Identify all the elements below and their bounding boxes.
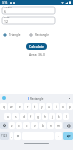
button[interactable]: i	[53, 103, 59, 110]
staticText: k	[58, 115, 60, 119]
staticText: 12	[4, 19, 8, 24]
button[interactable]: w	[8, 103, 15, 110]
staticText: Base	[4, 15, 10, 18]
button[interactable]: Height	[2, 7, 55, 14]
staticText: Height	[4, 5, 12, 8]
staticText: g	[37, 115, 39, 119]
button[interactable]: p	[67, 103, 73, 110]
button[interactable]: z	[9, 122, 15, 129]
staticText: j	[52, 115, 53, 119]
button[interactable]: t	[32, 103, 38, 110]
staticText: h	[44, 115, 46, 119]
staticText: Rectangle	[35, 33, 49, 37]
button[interactable]: o	[60, 103, 66, 110]
button[interactable]: g	[35, 113, 41, 120]
button[interactable]: c	[23, 122, 30, 129]
staticText: b	[42, 124, 44, 128]
button[interactable]: r	[24, 103, 31, 110]
staticText: Triangle	[9, 33, 21, 37]
button[interactable]: Backspace	[63, 122, 73, 129]
button[interactable]: s	[12, 113, 19, 120]
button[interactable]: Shift	[0, 122, 8, 129]
staticText: Area: 36.0	[29, 52, 45, 57]
staticText: z	[11, 124, 13, 128]
button[interactable]: b	[39, 122, 46, 129]
staticText: o	[62, 105, 64, 109]
staticText: v	[34, 124, 36, 128]
staticText: d	[23, 115, 25, 119]
staticText: ?123	[1, 134, 8, 138]
button[interactable]: e	[16, 103, 23, 110]
button[interactable]: l	[63, 113, 69, 120]
staticText: q	[3, 105, 5, 109]
staticText: s	[15, 115, 17, 119]
button[interactable]: y	[39, 103, 45, 110]
staticText: x	[18, 124, 20, 128]
button[interactable]: Calculate	[26, 43, 47, 50]
staticText: y	[41, 105, 43, 109]
staticText: i	[56, 105, 57, 109]
button[interactable]: Period	[55, 132, 62, 140]
button[interactable]: Comma	[10, 132, 13, 140]
staticText: Calculate	[29, 44, 44, 49]
staticText: Rectangle	[30, 97, 44, 101]
staticText: ,	[11, 134, 12, 138]
staticText: 3:16	[2, 1, 8, 5]
button[interactable]: n	[47, 122, 54, 129]
button[interactable]: m	[55, 122, 62, 129]
button[interactable]: v	[31, 122, 38, 129]
button[interactable]: Triangle	[3, 33, 21, 37]
button[interactable]: Enter	[63, 132, 73, 140]
staticText: .	[58, 134, 59, 138]
button[interactable]: a	[4, 113, 11, 120]
staticText: r	[27, 105, 29, 109]
button[interactable]: k	[56, 113, 62, 120]
button[interactable]: j	[49, 113, 55, 120]
button[interactable]: Google search	[2, 96, 6, 100]
button[interactable]: u	[46, 103, 52, 110]
staticText: w	[10, 105, 13, 109]
staticText: n	[50, 124, 52, 128]
staticText: 6	[4, 9, 6, 14]
staticText: l	[66, 115, 67, 119]
button[interactable]: Emoji	[14, 132, 21, 140]
button[interactable]: q	[0, 103, 7, 110]
staticText: t	[34, 105, 36, 109]
staticText: c	[26, 124, 28, 128]
button[interactable]: f	[28, 113, 34, 120]
staticText: e	[19, 105, 21, 109]
button[interactable]: ?123	[0, 132, 9, 140]
button[interactable]: x	[16, 122, 22, 129]
button[interactable]: h	[42, 113, 48, 120]
staticText: p	[69, 105, 71, 109]
button[interactable]: d	[20, 113, 27, 120]
staticText: u	[48, 105, 50, 109]
staticText: m	[57, 124, 60, 128]
staticText: f	[30, 115, 32, 119]
button[interactable]: Base	[2, 17, 55, 24]
staticText: a	[7, 115, 9, 119]
button[interactable]: Rectangle	[29, 33, 49, 37]
